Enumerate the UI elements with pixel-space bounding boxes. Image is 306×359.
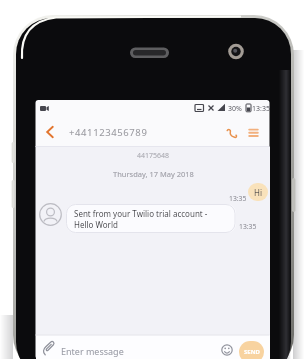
- staticText: 30%: [228, 104, 242, 114]
- button[interactable]: [42, 124, 58, 140]
- staticText: 44175648: [137, 151, 170, 161]
- button[interactable]: [224, 126, 239, 141]
- staticText: Enter message: [61, 345, 124, 357]
- button[interactable]: Hi: [248, 183, 268, 201]
- button[interactable]: [36, 335, 270, 359]
- staticText: Hello World: [74, 219, 118, 230]
- staticText: Sent from your Twilio trial account -: [74, 208, 208, 219]
- button[interactable]: [247, 127, 260, 139]
- staticText: 13:35: [239, 222, 257, 231]
- button[interactable]: Sent from your Twilio trial account -: [66, 204, 236, 233]
- staticText: Hi: [254, 187, 262, 198]
- staticText: 13:35: [252, 104, 270, 114]
- staticText: SEND: [244, 348, 260, 356]
- button[interactable]: [39, 203, 62, 226]
- button[interactable]: SEND: [239, 341, 264, 359]
- staticText: 13:35: [229, 194, 247, 203]
- staticText: +441123456789: [69, 126, 148, 139]
- staticText: Thursday, 17 May 2018: [113, 169, 194, 179]
